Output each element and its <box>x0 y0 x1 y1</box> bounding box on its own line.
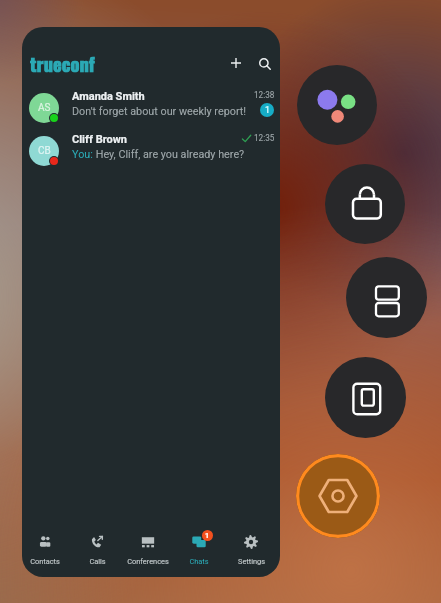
staticText: 1 <box>205 532 210 540</box>
staticText: Calls <box>89 557 106 566</box>
button[interactable]: Assistant <box>297 65 377 145</box>
button[interactable]: Contacts <box>22 525 69 577</box>
button[interactable]: CB <box>22 129 280 172</box>
button[interactable]: Split screen <box>346 257 427 338</box>
staticText: trueconf <box>30 50 95 76</box>
staticText: 12:35 <box>254 133 275 143</box>
button[interactable]: App info <box>296 454 380 538</box>
staticText: Chats <box>189 557 209 566</box>
staticText: 12:38 <box>254 90 275 100</box>
button[interactable]: Settings <box>227 525 275 577</box>
staticText: Contacts <box>30 557 60 566</box>
button[interactable]: Picture in picture <box>325 357 406 438</box>
button[interactable]: New chat <box>222 50 249 76</box>
button[interactable]: Calls <box>73 525 121 577</box>
staticText: You: <box>72 148 93 161</box>
button[interactable]: Search <box>251 51 278 77</box>
button[interactable]: Conferences <box>124 525 172 577</box>
button[interactable]: 1 <box>175 525 223 577</box>
staticText: AS <box>38 102 51 114</box>
staticText: Settings <box>238 557 265 566</box>
staticText: CB <box>38 145 51 157</box>
staticText: 1 <box>265 105 270 115</box>
button[interactable]: AS <box>22 86 280 129</box>
staticText: Hey, Cliff, are you already here? <box>93 148 245 161</box>
button[interactable]: Lock <box>325 164 405 244</box>
staticText: Don't forget about our weekly report! <box>72 105 247 118</box>
staticText: Conferences <box>127 557 169 566</box>
staticText: Cliff Brown <box>72 133 127 146</box>
staticText: Amanda Smith <box>72 90 145 103</box>
